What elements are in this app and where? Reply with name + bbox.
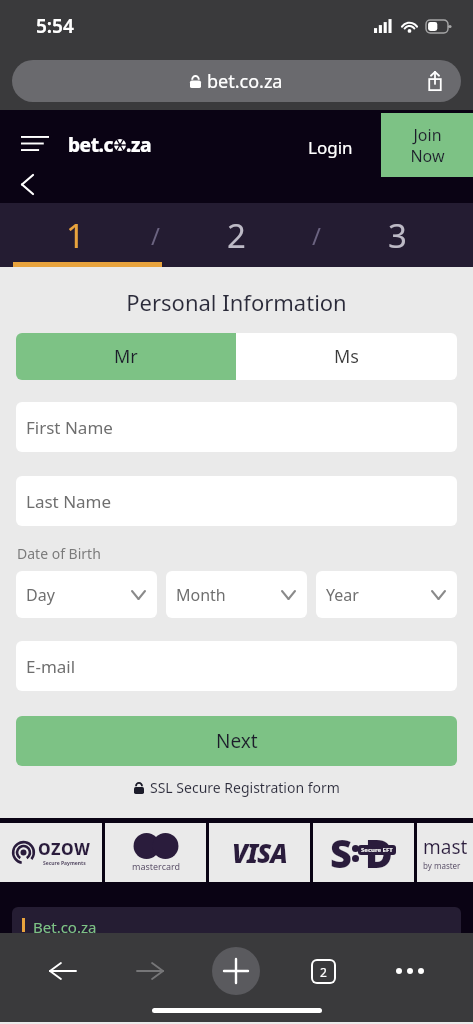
- staticText: /: [151, 219, 160, 252]
- staticText: Year: [326, 584, 359, 606]
- button[interactable]: Ms: [236, 333, 457, 380]
- button[interactable]: Year: [316, 571, 457, 618]
- button[interactable]: Next: [16, 716, 457, 766]
- staticText: .za: [126, 132, 151, 158]
- staticText: Month: [176, 584, 226, 606]
- staticText: Join Now: [410, 124, 445, 167]
- button[interactable]: Back: [39, 947, 87, 995]
- staticText: 5:54: [36, 13, 74, 39]
- staticText: mast: [423, 834, 468, 860]
- staticText: First Name: [26, 416, 113, 439]
- staticText: SSL Secure Registration form: [150, 778, 340, 797]
- staticText: Last Name: [26, 490, 112, 513]
- staticText: Personal Information: [0, 287, 473, 317]
- staticText: Day: [26, 584, 55, 606]
- staticText: mastercard: [132, 860, 181, 872]
- staticText: Secure EFT: [361, 846, 393, 854]
- staticText: 1: [66, 213, 85, 258]
- staticText: by master: [423, 860, 461, 871]
- staticText: bet.c: [68, 132, 114, 158]
- button[interactable]: Tabs: [299, 947, 347, 995]
- button[interactable]: Back: [12, 169, 42, 199]
- button[interactable]: OZOW: [0, 823, 102, 882]
- button[interactable]: Day: [16, 571, 157, 618]
- staticText: bet.co.za: [207, 69, 283, 94]
- staticText: /: [312, 219, 321, 252]
- button[interactable]: 2: [160, 203, 312, 267]
- staticText: Mr: [114, 344, 138, 369]
- staticText: Ms: [334, 344, 359, 369]
- button[interactable]: Last Name: [16, 476, 457, 526]
- button[interactable]: E-mail: [16, 641, 457, 691]
- staticText: OZOW: [38, 838, 91, 860]
- staticText: D: [365, 827, 393, 879]
- staticText: 3: [388, 213, 407, 258]
- button[interactable]: First Name: [16, 402, 457, 452]
- button[interactable]: bet.co.za: [12, 60, 461, 102]
- staticText: E-mail: [26, 655, 76, 678]
- staticText: Date of Birth: [17, 544, 101, 563]
- button[interactable]: Forward: [126, 947, 174, 995]
- staticText: Next: [216, 728, 258, 754]
- button[interactable]: VISA: [209, 823, 310, 882]
- button[interactable]: 3: [321, 203, 473, 267]
- button[interactable]: More: [386, 947, 434, 995]
- button[interactable]: Mr: [16, 333, 236, 380]
- button[interactable]: Menu: [18, 126, 52, 160]
- button[interactable]: New tab: [212, 947, 260, 995]
- button[interactable]: Month: [166, 571, 307, 618]
- staticText: 2: [227, 213, 246, 258]
- staticText: Bet.co.za: [33, 917, 97, 933]
- button[interactable]: mastercard: [105, 823, 206, 882]
- button[interactable]: Login: [308, 136, 353, 159]
- button[interactable]: 1: [0, 203, 151, 267]
- staticText: VISA: [232, 835, 287, 870]
- button[interactable]: Join Now: [381, 113, 473, 177]
- button[interactable]: S: [313, 823, 414, 882]
- staticText: S: [330, 827, 352, 879]
- button[interactable]: Share: [423, 69, 447, 93]
- staticText: 2: [320, 964, 327, 980]
- staticText: Secure Payments: [43, 860, 86, 867]
- button[interactable]: mast: [417, 823, 473, 882]
